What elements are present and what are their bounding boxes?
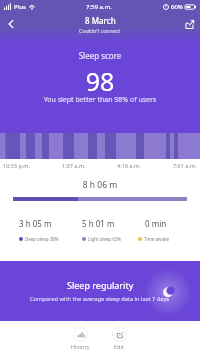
staticText: 98 [0,64,200,98]
staticText: 7:59 a.m. [86,3,112,11]
staticText: 4:19 a.m. [117,162,141,169]
staticText: 1:37 a.m. [62,162,86,169]
staticText: Sleep score [0,50,200,61]
staticText: Time awake [144,236,170,242]
staticText: Plus [14,3,26,11]
staticText: 10:55 p.m. [3,162,30,169]
staticText: 8 h 06 m [0,179,200,191]
button[interactable]: 3 h 05 m [19,218,59,242]
button[interactable]: Back [0,13,22,35]
staticText: Couldn't connect [79,27,121,34]
staticText: 3 h 05 m [19,218,52,229]
button[interactable]: History [61,327,99,350]
staticText: Light sleep 62% [88,236,122,242]
button[interactable]: Edit [100,327,138,350]
button[interactable]: Share [178,13,200,35]
staticText: 0 min [145,218,167,229]
staticText: 60% [171,3,183,11]
staticText: History [71,343,90,350]
staticText: Sleep regularity [67,279,134,291]
button[interactable]: 0 min [138,218,170,242]
staticText: Edit [114,343,124,350]
button[interactable]: 5 h 01 m [82,218,122,242]
staticText: 5 h 01 m [82,218,115,229]
staticText: Compared with the average sleep data in … [30,295,170,303]
staticText: You slept better than 98% of users [0,95,200,105]
staticText: 7:01 a.m. [173,162,197,169]
staticText: Deep sleep 38% [25,236,59,242]
staticText: 8 March [85,15,116,26]
button[interactable]: Sleep regularity [0,261,200,321]
